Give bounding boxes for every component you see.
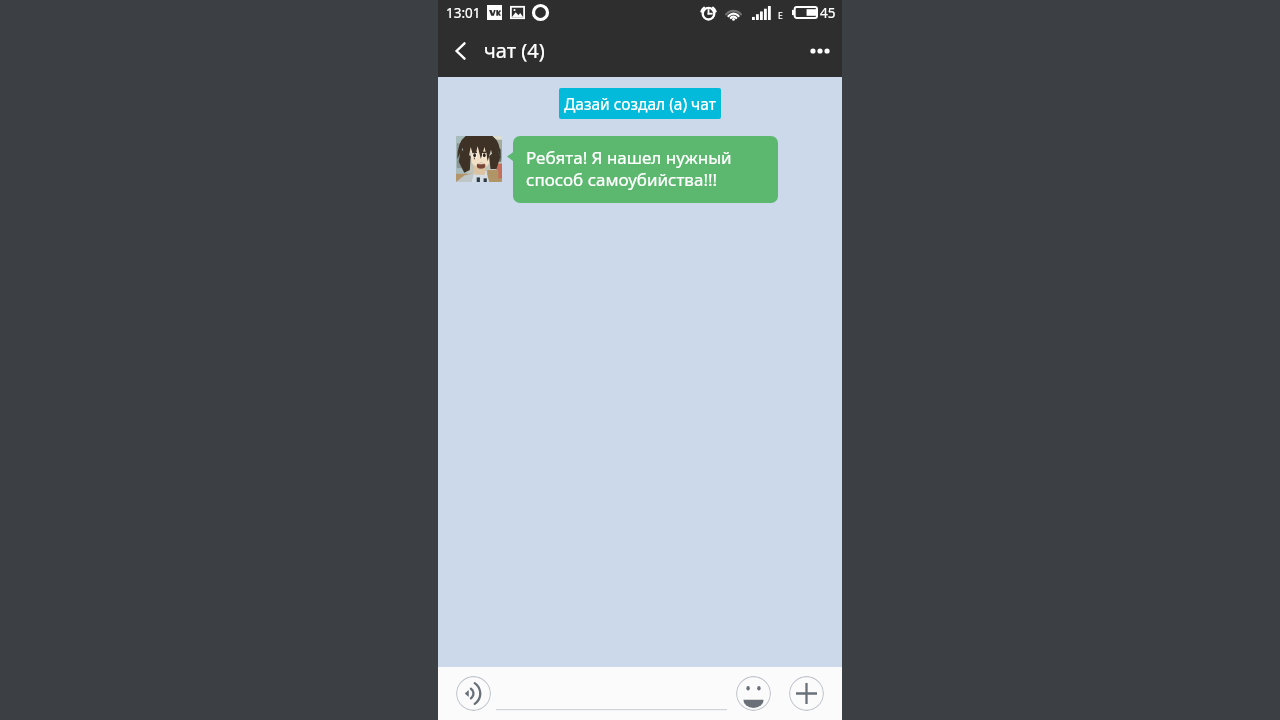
button[interactable]: Ребята! Я нашел нужный способ самоубийст…: [513, 136, 778, 203]
button[interactable]: Avatar: [456, 136, 502, 182]
staticText: 45: [820, 4, 836, 22]
button[interactable]: Voice message: [456, 676, 491, 711]
button[interactable]: Дазай создал (а) чат: [559, 88, 721, 119]
button[interactable]: Message input field: [496, 667, 731, 720]
button[interactable]: Emoji: [736, 676, 771, 711]
staticText: Дазай создал (а) чат: [564, 93, 716, 114]
staticText: Ребята! Я нашел нужный способ самоубийст…: [526, 146, 732, 191]
staticText: чат (4): [484, 37, 545, 64]
staticText: 13:01: [446, 4, 481, 22]
button[interactable]: More options: [798, 29, 842, 73]
staticText: E: [778, 10, 783, 22]
button[interactable]: Add attachment: [789, 676, 824, 711]
button[interactable]: Back: [438, 28, 484, 74]
